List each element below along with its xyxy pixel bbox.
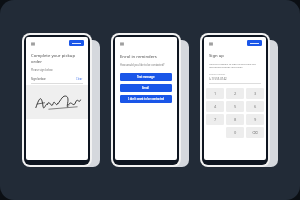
button[interactable]: Email bbox=[120, 84, 172, 92]
staticText: Sign below bbox=[31, 77, 46, 81]
staticText: Email bbox=[142, 86, 150, 90]
button[interactable]: 6 bbox=[246, 101, 264, 112]
button[interactable]: 9 bbox=[246, 114, 264, 125]
button[interactable]: 8 bbox=[226, 114, 244, 125]
button[interactable]: 5 bbox=[226, 101, 244, 112]
button[interactable]: ⌫ bbox=[246, 127, 264, 138]
staticText: I don't want to be contacted bbox=[128, 97, 165, 101]
staticText: 5 bbox=[234, 104, 237, 109]
staticText: 7 bbox=[214, 117, 217, 122]
button[interactable]: I don't want to be contacted bbox=[120, 95, 172, 103]
staticText: Enrol in reminders bbox=[120, 54, 157, 60]
button[interactable]: Text message bbox=[120, 73, 172, 81]
button[interactable] bbox=[26, 85, 88, 119]
button[interactable]: 3 bbox=[246, 88, 264, 99]
staticText: ⌫ bbox=[252, 130, 258, 135]
staticText: 6 bbox=[254, 104, 257, 109]
button[interactable]: Menu bbox=[119, 41, 124, 46]
button[interactable]: 1 bbox=[206, 88, 224, 99]
button[interactable]: 2 bbox=[226, 88, 244, 99]
staticText: Complete your pickup order bbox=[31, 53, 83, 65]
button[interactable] bbox=[69, 40, 84, 46]
button[interactable]: (+1) 555-0142 bbox=[209, 77, 261, 81]
staticText: 2 bbox=[234, 91, 237, 96]
staticText: 0 bbox=[234, 130, 237, 135]
staticText: 8 bbox=[234, 117, 237, 122]
button[interactable]: Menu bbox=[30, 41, 35, 46]
staticText: 1 bbox=[214, 91, 217, 96]
staticText: Please sign below bbox=[31, 68, 53, 72]
staticText: Add your details to sign up and take our… bbox=[209, 62, 261, 68]
staticText: (+1) 555-0142 bbox=[209, 77, 227, 81]
staticText: Sign up bbox=[209, 53, 224, 59]
button[interactable] bbox=[247, 40, 262, 46]
button[interactable]: Menu bbox=[208, 41, 213, 46]
button[interactable]: Clear bbox=[76, 77, 83, 81]
staticText: Text message bbox=[137, 75, 155, 79]
staticText: How would you like to be contacted? bbox=[120, 63, 165, 67]
staticText: 9 bbox=[254, 117, 257, 122]
button[interactable]: 0 bbox=[226, 127, 244, 138]
staticText: Clear bbox=[76, 77, 83, 81]
button[interactable]: 4 bbox=[206, 101, 224, 112]
staticText: 3 bbox=[254, 91, 257, 96]
staticText: Phone number bbox=[209, 73, 226, 76]
staticText: 4 bbox=[214, 104, 217, 109]
button[interactable]: 7 bbox=[206, 114, 224, 125]
